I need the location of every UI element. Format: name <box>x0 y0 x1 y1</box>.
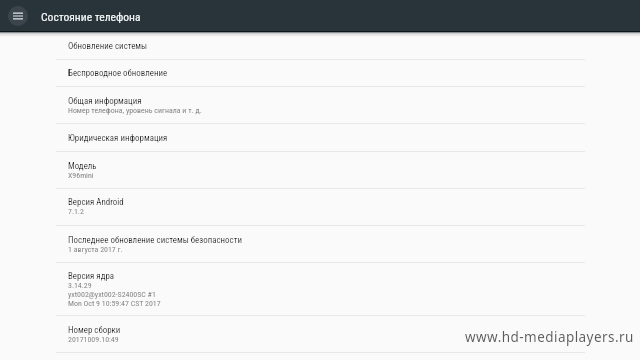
staticText: Номер сборки <box>68 325 121 335</box>
staticText: Модель <box>68 161 97 171</box>
staticText: Общая информация <box>68 96 142 106</box>
staticText: Юридическая информация <box>68 133 168 143</box>
button[interactable]: Версия Android <box>0 189 640 226</box>
button[interactable]: Последнее обновление системы безопасност… <box>0 226 640 263</box>
button[interactable]: Общая информация <box>0 87 640 124</box>
staticText: X96mini <box>68 171 94 180</box>
button[interactable]: Беспроводное обновление <box>0 60 640 87</box>
staticText: 1 августа 2017 г. <box>68 245 123 254</box>
staticText: Беспроводное обновление <box>68 68 168 78</box>
button[interactable]: Модель <box>0 152 640 189</box>
staticText: yxt002@yxt002-S2400SC #1 <box>68 290 156 299</box>
staticText: Состояние телефона <box>41 10 141 24</box>
button[interactable]: Open navigation menu <box>8 6 28 26</box>
staticText: Mon Oct 9 10:59:47 CST 2017 <box>68 299 161 308</box>
staticText: Обновление системы <box>68 41 148 51</box>
staticText: Номер телефона, уровень сигнала и т. д. <box>68 106 202 115</box>
staticText: 7.1.2 <box>68 207 84 216</box>
button[interactable]: Номер сборки <box>0 316 640 353</box>
staticText: 20171009.10:49 <box>68 335 119 344</box>
staticText: www.hd-mediaplayers.ru <box>465 328 634 346</box>
staticText: 3.14.29 <box>68 281 92 290</box>
button[interactable]: Обновление системы <box>0 37 640 60</box>
button[interactable]: Юридическая информация <box>0 124 640 152</box>
staticText: Версия Android <box>68 197 124 207</box>
staticText: Версия ядра <box>68 271 115 281</box>
staticText: Последнее обновление системы безопасност… <box>68 235 242 245</box>
button[interactable]: Версия ядра <box>0 263 640 316</box>
